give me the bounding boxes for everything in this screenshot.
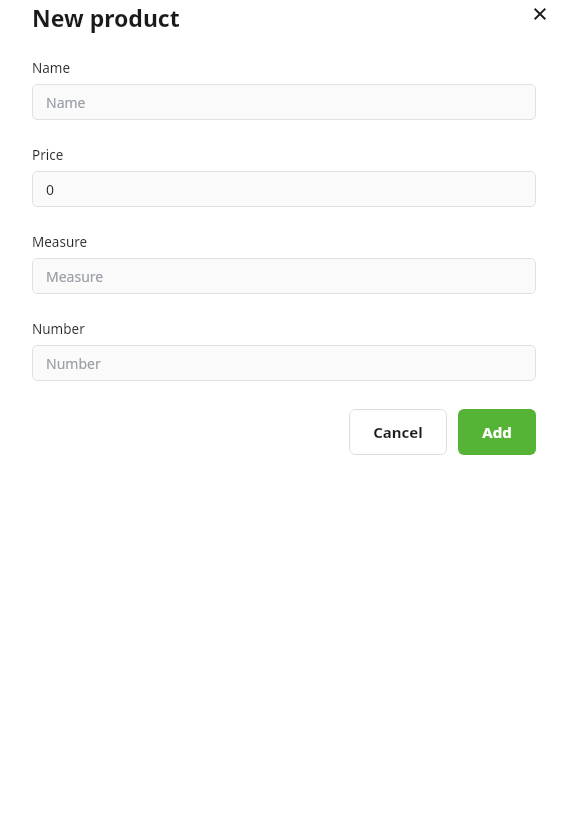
button[interactable]: Number — [32, 345, 536, 381]
button[interactable]: Close — [526, 0, 554, 28]
staticText: Number — [46, 354, 101, 373]
staticText: Measure — [32, 233, 88, 251]
button[interactable]: Cancel — [349, 409, 447, 455]
button[interactable]: Add — [458, 409, 536, 455]
staticText: Cancel — [373, 422, 423, 442]
staticText: Name — [32, 59, 71, 77]
staticText: Add — [482, 422, 512, 442]
staticText: Measure — [46, 267, 104, 286]
button[interactable]: Measure — [32, 258, 536, 294]
staticText: Number — [32, 320, 85, 338]
staticText: New product — [32, 2, 180, 33]
button[interactable]: 0 — [32, 171, 536, 207]
staticText: Price — [32, 146, 64, 164]
button[interactable]: Name — [32, 84, 536, 120]
staticText: Name — [46, 93, 86, 112]
staticText: 0 — [46, 180, 55, 199]
